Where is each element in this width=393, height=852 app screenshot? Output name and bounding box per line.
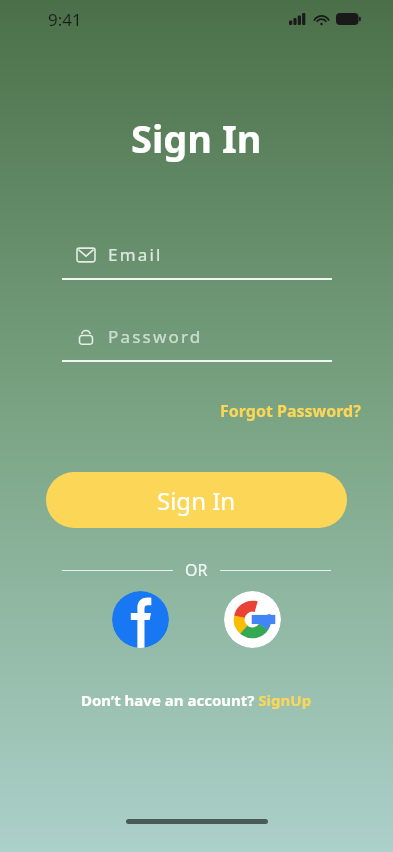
staticText: 9:41 [48, 8, 82, 31]
staticText: Forgot Password? [220, 400, 361, 422]
button[interactable]: Sign in with Google [224, 591, 281, 648]
button[interactable]: Email [62, 243, 332, 280]
button[interactable]: Sign in with Facebook [112, 591, 169, 648]
staticText: OR [185, 559, 208, 581]
button[interactable]: Sign In [46, 472, 347, 528]
button[interactable]: Don’t have an account? SignUp [77, 686, 316, 714]
button[interactable]: Forgot Password? [216, 396, 365, 426]
staticText: Sign In [131, 112, 262, 164]
button[interactable]: Password [62, 325, 332, 362]
staticText: Email [108, 243, 163, 266]
staticText: Don’t have an account? SignUp [81, 690, 312, 710]
staticText: Sign In [157, 484, 236, 517]
staticText: Password [108, 325, 203, 348]
